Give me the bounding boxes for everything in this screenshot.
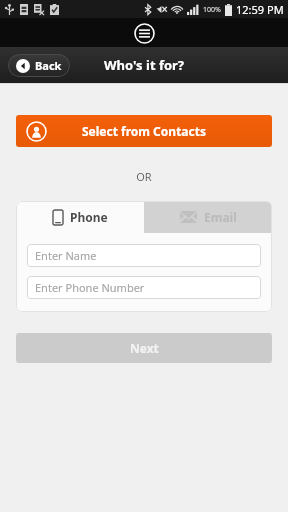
button[interactable]: Next (16, 333, 272, 363)
staticText: 100% (203, 5, 221, 15)
button[interactable]: Select from Contacts (16, 115, 272, 147)
staticText: 12:59 PM (236, 2, 284, 17)
staticText: OR (16, 169, 272, 184)
staticText: Enter Phone Number (35, 280, 145, 295)
staticText: Email (204, 209, 237, 225)
button[interactable]: Enter Phone Number (27, 276, 261, 299)
staticText: Who's it for? (104, 56, 185, 74)
button[interactable]: Back (8, 54, 70, 77)
button[interactable]: Phone (16, 201, 144, 233)
staticText: Phone (70, 209, 108, 225)
staticText: Enter Name (35, 248, 97, 263)
button[interactable]: Menu (131, 20, 157, 46)
staticText: Back (35, 58, 62, 73)
staticText: Select from Contacts (82, 123, 206, 139)
staticText: Next (130, 340, 159, 356)
button[interactable]: Email (144, 201, 272, 233)
button[interactable]: Enter Name (27, 244, 261, 267)
